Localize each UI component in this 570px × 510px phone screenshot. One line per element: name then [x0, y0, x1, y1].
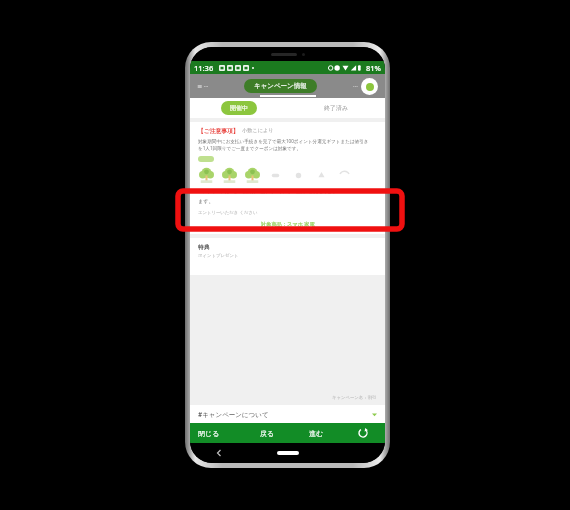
- staticText: 戻る: [260, 429, 275, 438]
- button[interactable]: 対象商品：スマホ 家電: [198, 218, 377, 229]
- button[interactable]: Campaign icon: [198, 167, 215, 184]
- button[interactable]: Menu: [197, 82, 209, 90]
- staticText: 【ご注意事項】: [198, 127, 239, 134]
- button[interactable]: Campaign icon: [244, 167, 261, 184]
- staticText: 閉じる: [198, 429, 220, 438]
- staticText: 対象商品：スマホ 家電: [261, 220, 315, 227]
- button[interactable]: Locked icon: [336, 167, 353, 184]
- staticText: 小数こにより: [242, 127, 274, 134]
- button[interactable]: Locked icon: [313, 167, 330, 184]
- button[interactable]: Account: [361, 78, 378, 95]
- staticText: ···: [353, 82, 358, 90]
- button[interactable]: Locked icon: [290, 167, 307, 184]
- staticText: ≡ ···: [197, 82, 209, 90]
- button[interactable]: Home: [277, 451, 299, 455]
- staticText: キャンペーン名：割引: [332, 395, 377, 401]
- button[interactable]: 進む: [292, 423, 341, 443]
- staticText: ます。: [198, 198, 214, 205]
- staticText: 終了済み: [324, 104, 349, 112]
- button[interactable]: 開催中: [190, 98, 287, 118]
- button[interactable]: Locked icon: [267, 167, 284, 184]
- staticText: エントリーいただき対象のお支払いでポイント進呈の対象になります: [198, 189, 337, 195]
- button[interactable]: Back: [216, 450, 222, 456]
- button[interactable]: #キャンペーンについて: [190, 405, 385, 423]
- button[interactable]: キャンペーン情報: [244, 79, 317, 93]
- button[interactable]: Reload: [341, 423, 385, 443]
- staticText: #キャンペーンについて: [198, 410, 269, 419]
- staticText: 進む: [309, 429, 324, 438]
- staticText: 11:36: [194, 63, 214, 73]
- button[interactable]: 戻る: [243, 423, 292, 443]
- staticText: 81%: [366, 63, 381, 73]
- button[interactable]: 終了済み: [287, 98, 385, 118]
- staticText: 特典: [198, 243, 210, 250]
- staticText: 対象期間中にお支払い手続きを完了で最大100ポイント分還元ギフトまたは値引き を…: [198, 138, 369, 152]
- staticText: ポイントプレゼント: [198, 253, 239, 259]
- button[interactable]: 閉じる: [190, 423, 243, 443]
- staticText: エントリーいただき ください: [198, 209, 258, 215]
- staticText: キャンペーン情報: [254, 82, 307, 90]
- button[interactable]: Campaign icon: [221, 167, 238, 184]
- staticText: 開催中: [230, 104, 248, 112]
